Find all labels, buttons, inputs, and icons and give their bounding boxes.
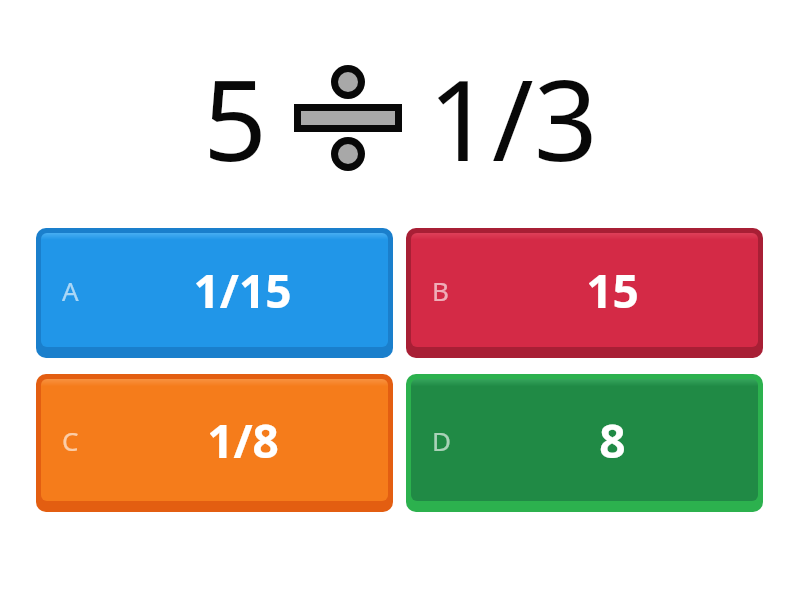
staticText: 1/3	[428, 41, 598, 194]
staticText: 1/15	[193, 259, 292, 322]
staticText: A	[62, 273, 79, 308]
staticText: 15	[586, 259, 639, 322]
button[interactable]: C	[36, 374, 393, 512]
button[interactable]: B	[406, 228, 763, 358]
button[interactable]: D	[406, 374, 763, 512]
staticText: B	[432, 273, 449, 308]
staticText: 8	[599, 409, 626, 472]
staticText: 5	[203, 41, 268, 194]
staticText: C	[62, 423, 79, 458]
staticText: 1/8	[207, 409, 279, 472]
button[interactable]: A	[36, 228, 393, 358]
staticText: D	[432, 423, 451, 458]
